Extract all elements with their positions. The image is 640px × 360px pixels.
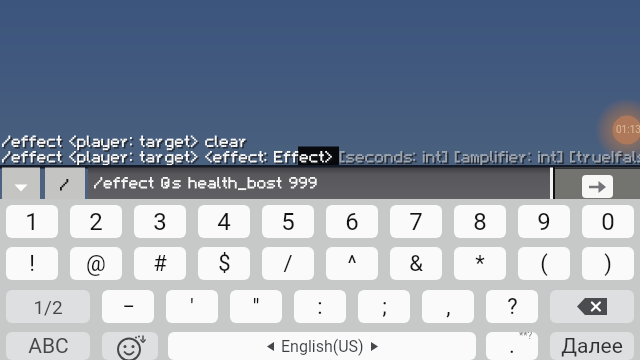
staticText: 4 — [217, 208, 231, 236]
button[interactable]: 7 — [390, 205, 442, 238]
button[interactable]: , — [422, 290, 474, 323]
staticText: 7 — [409, 208, 423, 236]
button[interactable]: : — [294, 290, 346, 323]
staticText: * — [475, 251, 485, 277]
staticText: # — [153, 251, 167, 277]
button[interactable]: / — [262, 247, 314, 280]
button[interactable]: ; — [358, 290, 410, 323]
staticText: ( — [540, 251, 548, 277]
button[interactable]: @ — [70, 247, 122, 280]
button[interactable]: − — [102, 290, 154, 323]
button[interactable]: Backspace — [550, 290, 634, 323]
staticText: 8 — [473, 208, 487, 236]
staticText: 5 — [281, 208, 295, 236]
button[interactable]: Emoji — [102, 332, 158, 360]
button[interactable]: 6 — [326, 205, 378, 238]
staticText: English(US) — [281, 337, 364, 356]
button[interactable]: ABC — [6, 332, 90, 360]
staticText: & — [409, 251, 423, 277]
button[interactable]: Далее — [550, 332, 634, 360]
button[interactable] — [88, 167, 551, 199]
button[interactable]: Slash command — [45, 167, 85, 199]
staticText: ^ — [347, 251, 357, 277]
staticText: 9 — [537, 208, 551, 236]
button[interactable]: # — [134, 247, 186, 280]
button[interactable]: ' — [166, 290, 218, 323]
button[interactable]: 3 — [134, 205, 186, 238]
button[interactable]: & — [390, 247, 442, 280]
button[interactable]: . — [486, 332, 538, 360]
staticText: : — [317, 294, 323, 320]
staticText: − — [122, 294, 135, 320]
button[interactable]: Send — [582, 175, 613, 198]
staticText: , — [446, 294, 451, 320]
button[interactable]: 0 — [582, 205, 634, 238]
button[interactable]: ? — [486, 290, 538, 323]
button[interactable]: 1 — [6, 205, 58, 238]
staticText: 3 — [153, 208, 167, 236]
staticText: Далее — [561, 334, 623, 359]
staticText: 01:13 — [616, 124, 640, 136]
staticText: 1 — [25, 208, 39, 236]
staticText: ) — [604, 251, 612, 277]
staticText: @ — [86, 251, 106, 277]
staticText: ABC — [28, 334, 69, 359]
staticText: / — [283, 251, 293, 277]
button[interactable]: ( — [518, 247, 570, 280]
button[interactable]: $ — [198, 247, 250, 280]
button[interactable]: 9 — [518, 205, 570, 238]
button[interactable]: * — [454, 247, 506, 280]
staticText: **? — [519, 332, 533, 342]
staticText: " — [252, 294, 260, 320]
button[interactable]: " — [230, 290, 282, 323]
staticText: . — [509, 333, 515, 359]
staticText: ' — [190, 294, 194, 320]
button[interactable]: 1/2 — [6, 290, 90, 323]
staticText: ; — [382, 294, 387, 320]
staticText: 2 — [89, 208, 103, 236]
button[interactable]: ^ — [326, 247, 378, 280]
button[interactable]: ) — [582, 247, 634, 280]
button[interactable]: Hide keyboard — [2, 167, 40, 199]
button[interactable]: English(US) — [168, 332, 476, 360]
staticText: 6 — [345, 208, 359, 236]
button[interactable]: 4 — [198, 205, 250, 238]
staticText: 1/2 — [33, 296, 63, 318]
staticText: 0 — [601, 208, 615, 236]
staticText: ? — [507, 294, 518, 320]
staticText: ! — [29, 251, 35, 277]
button[interactable]: ! — [6, 247, 58, 280]
button[interactable]: 5 — [262, 205, 314, 238]
button[interactable]: 2 — [70, 205, 122, 238]
staticText: $ — [218, 251, 231, 277]
button[interactable]: 8 — [454, 205, 506, 238]
